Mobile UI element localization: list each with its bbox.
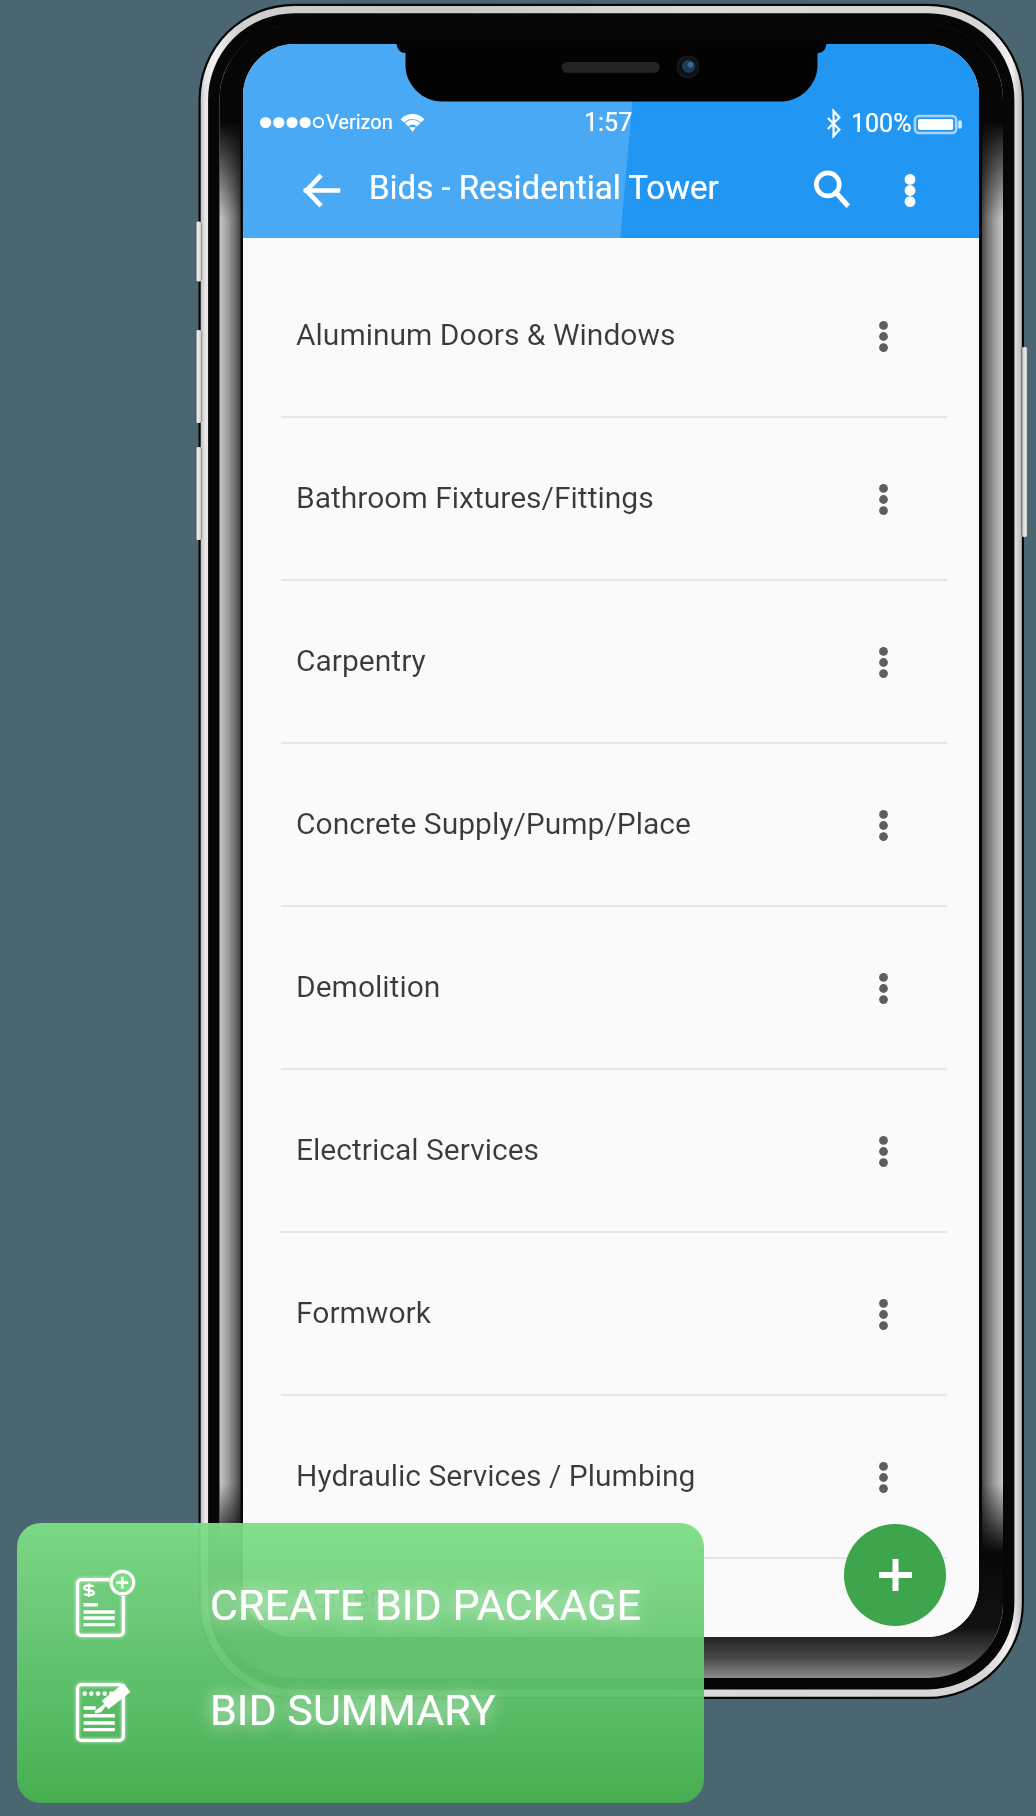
button[interactable]: Back bbox=[285, 154, 357, 226]
button[interactable]: Options bbox=[851, 793, 915, 857]
button[interactable]: Concrete Supply/Pump/Place bbox=[243, 744, 979, 907]
button[interactable]: Options bbox=[851, 630, 915, 694]
staticText: Concrete Supply/Pump/Place bbox=[296, 806, 691, 841]
button[interactable]: Aluminum Doors & Windows bbox=[243, 255, 979, 418]
staticText: 100% bbox=[851, 109, 912, 138]
button[interactable]: BID SUMMARY bbox=[17, 1657, 704, 1762]
staticText: BID SUMMARY bbox=[210, 1685, 496, 1735]
button[interactable]: Formwork bbox=[243, 1233, 979, 1396]
staticText: Bathroom Fixtures/Fittings bbox=[296, 480, 654, 515]
button[interactable]: Joinery bbox=[243, 1559, 979, 1637]
staticText: Verizon bbox=[326, 110, 393, 133]
button[interactable]: Hydraulic Services / Plumbing bbox=[243, 1396, 979, 1559]
button[interactable]: More options bbox=[871, 151, 949, 229]
button[interactable]: Search bbox=[792, 151, 870, 229]
button[interactable]: Options bbox=[851, 1282, 915, 1346]
button[interactable]: Bathroom Fixtures/Fittings bbox=[243, 418, 979, 581]
button[interactable]: Add bid bbox=[844, 1524, 946, 1626]
button[interactable]: Carpentry bbox=[243, 581, 979, 744]
button[interactable]: Demolition bbox=[243, 907, 979, 1070]
button[interactable]: Electrical Services bbox=[243, 1070, 979, 1233]
staticText: Joinery bbox=[296, 1580, 395, 1615]
button[interactable]: Options bbox=[851, 1119, 915, 1183]
button[interactable]: Options bbox=[851, 467, 915, 531]
button[interactable]: Options bbox=[851, 1445, 915, 1509]
staticText: Electrical Services bbox=[296, 1132, 540, 1167]
staticText: Carpentry bbox=[296, 643, 426, 678]
button[interactable]: Options bbox=[851, 956, 915, 1020]
button[interactable]: Options bbox=[851, 304, 915, 368]
button[interactable]: CREATE BID PACKAGE bbox=[17, 1552, 704, 1657]
staticText: 1:57 bbox=[584, 108, 633, 137]
staticText: Formwork bbox=[296, 1295, 431, 1330]
staticText: Hydraulic Services / Plumbing bbox=[296, 1458, 696, 1493]
button[interactable]: Options bbox=[851, 1566, 915, 1630]
staticText: CREATE BID PACKAGE bbox=[210, 1580, 641, 1630]
staticText: Demolition bbox=[296, 969, 441, 1004]
staticText: Bids - Residential Tower bbox=[369, 168, 719, 207]
staticText: Aluminum Doors & Windows bbox=[296, 317, 676, 352]
